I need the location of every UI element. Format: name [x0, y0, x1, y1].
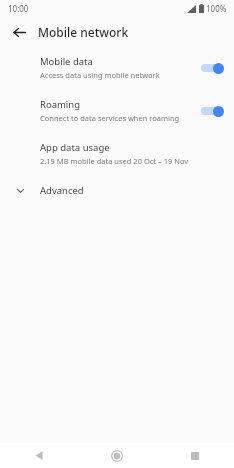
button[interactable]: Toggle	[199, 61, 224, 75]
staticText: 10:00	[8, 3, 29, 14]
button[interactable]: App data usage	[0, 132, 234, 175]
button[interactable]: Recent apps	[156, 443, 234, 468]
staticText: Mobile data	[40, 55, 93, 68]
staticText: Access data using mobile network	[40, 70, 160, 80]
staticText: Advanced	[40, 184, 84, 197]
button[interactable]: Advanced	[0, 175, 234, 205]
staticText: 100%	[206, 3, 227, 14]
button[interactable]: Toggle	[199, 104, 224, 118]
button[interactable]: Home	[78, 443, 156, 468]
staticText: Mobile network	[38, 24, 129, 40]
button[interactable]: Roaming	[0, 89, 234, 132]
staticText: App data usage	[40, 141, 110, 154]
staticText: Roaming	[40, 98, 81, 111]
button[interactable]: Back	[6, 19, 32, 45]
staticText: Connect to data services when roaming	[40, 113, 180, 123]
button[interactable]: Mobile data	[0, 46, 234, 89]
button[interactable]: Back	[0, 443, 78, 468]
staticText: 2.19 MB mobile data used 20 Oct – 19 Nov	[40, 156, 189, 166]
